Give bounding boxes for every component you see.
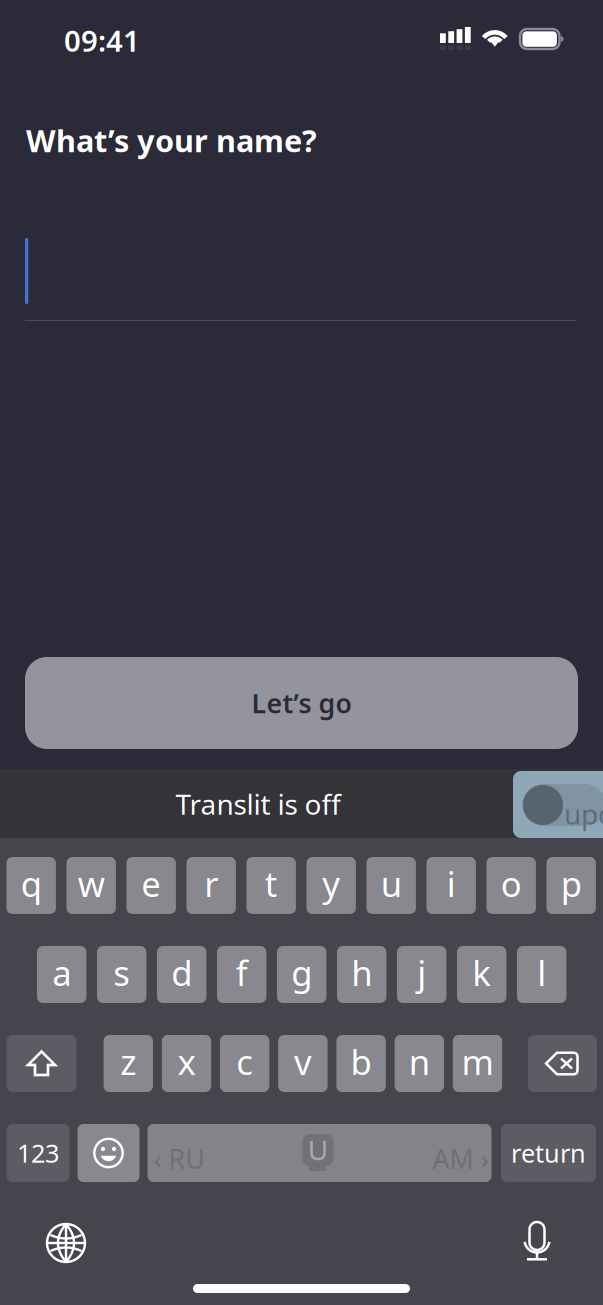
button[interactable]: h: [337, 946, 386, 1003]
staticText: 123: [17, 1136, 59, 1170]
button[interactable]: x: [162, 1035, 211, 1092]
button[interactable]: r: [186, 857, 236, 914]
button[interactable]: Space: [147, 1124, 491, 1182]
staticText: h: [351, 949, 372, 995]
staticText: c: [236, 1038, 253, 1084]
button[interactable]: Delete: [528, 1035, 597, 1092]
button[interactable]: Dictation: [521, 1222, 553, 1264]
staticText: t: [265, 860, 278, 906]
staticText: y: [322, 860, 340, 906]
button[interactable]: i: [426, 857, 476, 914]
staticText: e: [141, 860, 161, 906]
button[interactable]: 123: [6, 1124, 69, 1182]
button[interactable]: q: [6, 857, 56, 914]
staticText: b: [351, 1038, 372, 1084]
button[interactable]: Let’s go: [25, 657, 578, 749]
button[interactable]: Next keyboard: [45, 1222, 87, 1264]
staticText: i: [447, 860, 456, 906]
staticText: ‹ RU: [153, 1141, 204, 1176]
button[interactable]: g: [277, 946, 326, 1003]
staticText: return: [511, 1136, 586, 1170]
staticText: g: [291, 949, 312, 995]
button[interactable]: Emoji: [77, 1124, 139, 1182]
staticText: 09:41: [64, 21, 140, 60]
button[interactable]: m: [453, 1035, 502, 1092]
button[interactable]: l: [517, 946, 566, 1003]
staticText: k: [472, 949, 491, 995]
staticText: v: [294, 1038, 312, 1084]
button[interactable]: Shift: [6, 1035, 76, 1092]
staticText: What’s your name?: [26, 120, 317, 161]
button[interactable]: f: [217, 946, 266, 1003]
button[interactable]: t: [246, 857, 296, 914]
staticText: d: [171, 949, 192, 995]
button[interactable]: a: [37, 946, 86, 1003]
button[interactable]: b: [336, 1035, 386, 1092]
button[interactable]: y: [306, 857, 356, 914]
button[interactable]: o: [486, 857, 536, 914]
button[interactable]: p: [546, 857, 596, 914]
staticText: x: [177, 1038, 195, 1084]
staticText: n: [409, 1038, 430, 1084]
staticText: r: [204, 860, 218, 906]
staticText: o: [501, 860, 522, 906]
staticText: z: [120, 1038, 136, 1084]
button[interactable]: return: [501, 1124, 596, 1182]
staticText: AM ›: [432, 1141, 488, 1176]
staticText: upq: [564, 795, 603, 832]
staticText: w: [78, 860, 105, 906]
staticText: u: [381, 860, 402, 906]
button[interactable]: c: [220, 1035, 269, 1092]
button[interactable]: k: [457, 946, 506, 1003]
button[interactable]: s: [97, 946, 146, 1003]
staticText: p: [561, 860, 582, 906]
button[interactable]: u: [366, 857, 416, 914]
button[interactable]: j: [397, 946, 446, 1003]
button[interactable]: v: [278, 1035, 328, 1092]
staticText: s: [113, 949, 130, 995]
button[interactable]: e: [126, 857, 176, 914]
button[interactable]: d: [157, 946, 206, 1003]
staticText: f: [236, 949, 248, 995]
staticText: Let’s go: [251, 685, 351, 721]
button[interactable]: n: [395, 1035, 444, 1092]
button[interactable]: z: [104, 1035, 153, 1092]
staticText: j: [417, 949, 426, 995]
staticText: m: [461, 1038, 493, 1084]
staticText: l: [537, 949, 546, 995]
staticText: a: [52, 949, 71, 995]
button[interactable]: w: [66, 857, 116, 914]
staticText: Translit is off: [175, 785, 340, 823]
staticText: q: [21, 860, 42, 906]
